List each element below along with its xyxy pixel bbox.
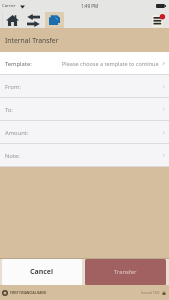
button[interactable]: Templates [45, 12, 64, 28]
button[interactable]: Amount: [0, 121, 169, 144]
staticText: 1:49 PM [81, 3, 99, 9]
staticText: Insured FDIC [141, 291, 160, 295]
staticText: Transfer [114, 268, 137, 276]
staticText: From: [5, 83, 21, 91]
button[interactable]: Template: [0, 52, 169, 75]
button[interactable]: Transfer [85, 259, 166, 285]
staticText: To: [5, 106, 13, 114]
staticText: Template: [5, 60, 32, 68]
button[interactable]: Transfers [22, 12, 45, 28]
staticText: Cancel [30, 267, 54, 277]
button[interactable]: Home [2, 12, 22, 28]
staticText: Note: [5, 152, 20, 160]
button[interactable]: Cancel [2, 259, 82, 285]
button[interactable]: From: [0, 75, 169, 98]
button[interactable]: Note: [0, 144, 169, 167]
button[interactable]: To: [0, 98, 169, 121]
button[interactable]: Menu [150, 12, 166, 28]
staticText: Please choose a template to continue [62, 60, 159, 67]
staticText: Amount: [5, 129, 29, 137]
staticText: FIRST FINANCIAL BANK [10, 291, 46, 295]
staticText: Internal Transfer [5, 36, 59, 45]
staticText: Carrier [2, 3, 16, 9]
